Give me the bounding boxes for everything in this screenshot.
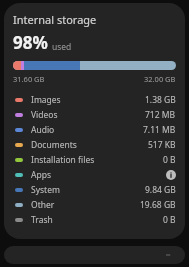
staticText: Documents — [31, 139, 77, 151]
button[interactable]: Apps — [13, 167, 176, 182]
staticText: 7.11 MB — [143, 124, 176, 136]
staticText: Audio — [31, 124, 55, 136]
button[interactable]: Installation files — [13, 152, 176, 167]
staticText: used — [52, 41, 72, 53]
button[interactable]: Documents — [13, 137, 176, 152]
staticText: Trash — [31, 214, 53, 226]
staticText: 0 B — [163, 154, 176, 166]
staticText: Internal storage — [13, 12, 97, 27]
staticText: 19.68 GB — [140, 199, 176, 211]
button[interactable]: Videos — [13, 107, 176, 122]
button[interactable]: Other — [13, 197, 176, 212]
staticText: 0 B — [163, 214, 176, 226]
staticText: Images — [31, 94, 61, 106]
staticText: 517 KB — [148, 139, 176, 151]
staticText: Other — [31, 199, 55, 211]
button[interactable]: System — [13, 182, 176, 197]
button[interactable]: Audio — [13, 122, 176, 137]
staticText: Installation files — [31, 154, 95, 166]
staticText: 98% — [13, 31, 48, 54]
button[interactable]: Trash — [13, 212, 176, 227]
staticText: 9.84 GB — [145, 184, 176, 196]
other: Apps info — [166, 170, 176, 180]
staticText: 712 MB — [145, 109, 176, 121]
staticText: Videos — [31, 109, 58, 121]
button[interactable]: Trash — [4, 246, 185, 264]
staticText: Apps — [31, 169, 51, 181]
button[interactable]: Internal storage — [4, 3, 185, 239]
staticText: 32.00 GB — [144, 74, 176, 84]
button[interactable]: Images — [13, 92, 176, 107]
staticText: System — [31, 184, 60, 196]
staticText: 1.38 GB — [145, 94, 176, 106]
staticText: 31.60 GB — [13, 74, 45, 84]
